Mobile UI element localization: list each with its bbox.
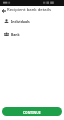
staticText: Bank (11, 32, 20, 37)
staticText: Individuals (11, 19, 30, 24)
button[interactable]: CONTINUE (2, 107, 62, 116)
button[interactable]: Back (0, 7, 7, 14)
staticText: CONTINUE (23, 110, 41, 114)
button[interactable]: Bank (0, 28, 64, 41)
staticText: Recipient bank details (7, 7, 52, 13)
button[interactable]: Individuals (0, 15, 64, 28)
